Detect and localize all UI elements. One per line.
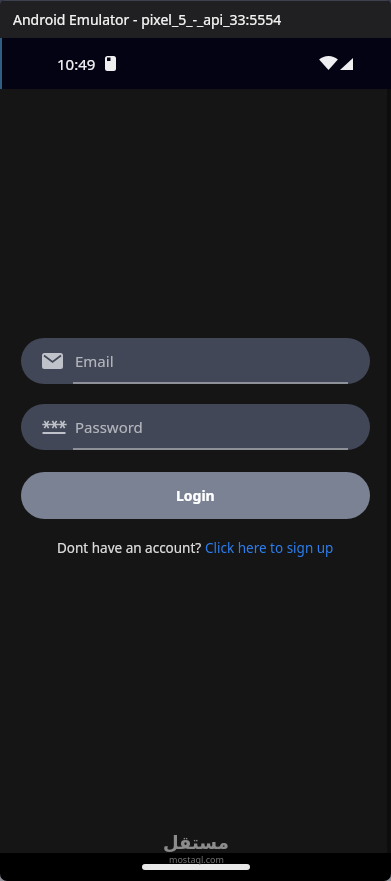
button[interactable] [142, 864, 250, 870]
staticText: Login [176, 486, 215, 505]
staticText: mostaql.com [169, 853, 224, 865]
staticText: مستقل [163, 832, 229, 853]
button[interactable]: Email [21, 338, 370, 384]
staticText: 10:49 [57, 54, 96, 74]
staticText: Click here to sign up [205, 539, 334, 557]
staticText: Android Emulator - pixel_5_-_api_33:5554 [13, 10, 282, 29]
staticText: Dont have an account? [57, 539, 205, 557]
button[interactable]: Click here to sign up [205, 539, 334, 557]
button[interactable]: Login [21, 472, 370, 519]
staticText: Email [75, 351, 114, 371]
button[interactable]: Password [21, 404, 370, 450]
staticText: Password [75, 417, 143, 437]
